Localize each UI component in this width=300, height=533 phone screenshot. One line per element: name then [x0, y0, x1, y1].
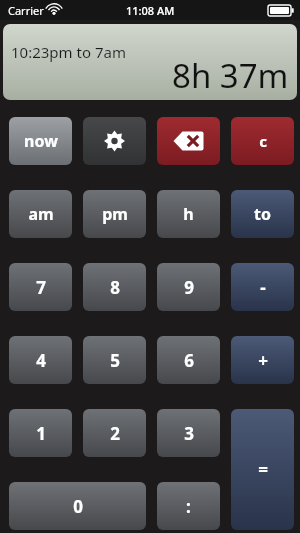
staticText: 8 [110, 276, 120, 299]
button[interactable]: 4 [9, 336, 72, 384]
button[interactable]: am [9, 190, 72, 238]
button[interactable]: Backspace [157, 117, 220, 165]
staticText: : [186, 495, 191, 518]
button[interactable]: = [231, 409, 294, 530]
button[interactable]: 6 [157, 336, 220, 384]
staticText: - [260, 276, 266, 299]
button[interactable]: pm [83, 190, 146, 238]
staticText: = [258, 458, 268, 481]
staticText: h [183, 203, 194, 225]
staticText: 5 [110, 349, 120, 372]
staticText: + [258, 349, 268, 372]
staticText: 3 [184, 422, 194, 445]
button[interactable]: + [231, 336, 294, 384]
staticText: pm [102, 203, 128, 225]
button[interactable]: Settings [83, 117, 146, 165]
staticText: c [259, 131, 267, 151]
button[interactable]: 9 [157, 263, 220, 311]
button[interactable]: 3 [157, 409, 220, 457]
staticText: 11:08 AM [126, 3, 175, 18]
staticText: now [24, 130, 58, 152]
button[interactable]: 1 [9, 409, 72, 457]
button[interactable]: c [231, 117, 294, 165]
staticText: 4 [36, 349, 46, 372]
button[interactable]: to [231, 190, 294, 238]
staticText: 6 [184, 349, 194, 372]
staticText: 9 [184, 276, 194, 299]
staticText: 2 [110, 422, 120, 445]
button[interactable]: 5 [83, 336, 146, 384]
staticText: 0 [73, 495, 83, 518]
button[interactable]: 0 [9, 482, 146, 530]
staticText: am [28, 203, 54, 225]
button[interactable]: 7 [9, 263, 72, 311]
staticText: to [254, 203, 271, 225]
button[interactable]: : [157, 482, 220, 530]
staticText: 1 [36, 422, 46, 445]
staticText: 8h 37m [172, 53, 289, 98]
staticText: 7 [36, 276, 46, 299]
staticText: Carrier [8, 3, 44, 18]
button[interactable]: 8 [83, 263, 146, 311]
button[interactable]: now [9, 117, 72, 165]
button[interactable]: h [157, 190, 220, 238]
button[interactable]: - [231, 263, 294, 311]
button[interactable]: 2 [83, 409, 146, 457]
staticText: 10:23pm to 7am [11, 42, 126, 62]
